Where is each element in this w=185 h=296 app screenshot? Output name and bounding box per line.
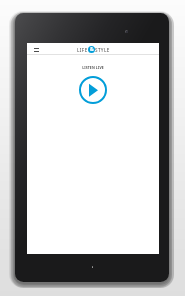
staticText: LIFE bbox=[77, 47, 88, 53]
staticText: & bbox=[90, 46, 94, 53]
button[interactable]: Play live stream bbox=[79, 76, 107, 104]
button[interactable]: Open navigation menu bbox=[32, 44, 41, 55]
staticText: STYLE bbox=[95, 47, 110, 53]
staticText: LISTEN LIVE bbox=[82, 65, 104, 70]
